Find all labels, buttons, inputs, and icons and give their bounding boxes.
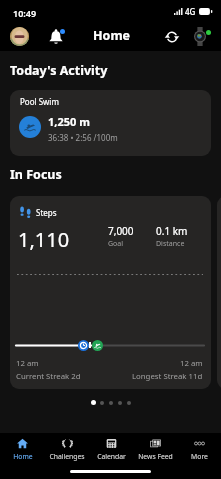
- staticText: Calendar: [97, 452, 126, 461]
- staticText: News Feed: [138, 452, 173, 461]
- staticText: 0.1 km: [156, 224, 188, 238]
- button[interactable]: Watch: [194, 27, 206, 46]
- staticText: Current Streak 2d: [16, 371, 81, 382]
- button[interactable]: Pool Swim: [10, 90, 211, 156]
- staticText: 4G: [185, 6, 196, 17]
- staticText: Today's Activity: [10, 62, 108, 79]
- staticText: 36:38 • 2:56 /100m: [48, 132, 118, 143]
- button[interactable]: Profile: [10, 27, 29, 46]
- staticText: Home: [13, 452, 33, 461]
- button[interactable]: Notifications: [47, 28, 65, 46]
- staticText: In Focus: [10, 166, 62, 183]
- button[interactable]: Challenges: [45, 433, 89, 461]
- button[interactable]: More: [177, 433, 221, 461]
- button[interactable]: Home: [0, 433, 45, 461]
- staticText: Pool Swim: [20, 96, 59, 107]
- staticText: Home: [93, 27, 131, 44]
- button[interactable]: Sync: [164, 30, 180, 44]
- staticText: Distance: [156, 239, 185, 249]
- staticText: 12 am: [180, 358, 203, 369]
- staticText: More: [191, 452, 208, 461]
- staticText: 7,000: [108, 224, 134, 238]
- staticText: 1,250 m: [48, 114, 90, 129]
- staticText: 12 am: [16, 358, 39, 369]
- staticText: 10:49: [13, 7, 37, 19]
- staticText: Steps: [36, 207, 57, 218]
- staticText: Goal: [108, 239, 124, 249]
- staticText: Challenges: [49, 452, 85, 461]
- staticText: Longest Streak 11d: [132, 371, 203, 382]
- button[interactable]: News Feed: [133, 433, 177, 461]
- button[interactable]: Calendar: [89, 433, 133, 461]
- button[interactable]: Steps: [10, 196, 211, 389]
- staticText: 1,110: [18, 226, 70, 253]
